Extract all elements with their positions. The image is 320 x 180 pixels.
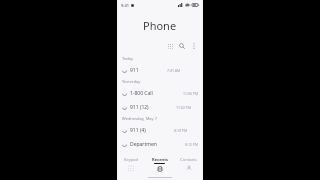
staticText: 1-800 Call FBI (2) xyxy=(130,90,156,97)
staticText: 11:06 PM xyxy=(183,91,199,96)
staticText: 911 (12) xyxy=(130,104,149,111)
button[interactable]: Department Of Justice DC xyxy=(117,137,203,151)
button[interactable]: More options xyxy=(189,41,199,51)
staticText: Wednesday, May 7 xyxy=(122,116,157,121)
staticText: Today xyxy=(122,56,134,61)
staticText: 911 (4) xyxy=(130,127,146,134)
button[interactable]: Contacts xyxy=(174,154,203,174)
button[interactable]: Keypad xyxy=(117,154,145,174)
button[interactable]: 911 (4) xyxy=(117,123,203,137)
staticText: Department Of Justice DC xyxy=(130,141,157,148)
staticText: 11:02 PM xyxy=(176,105,192,110)
staticText: Keypad xyxy=(124,157,138,162)
button[interactable]: 911 xyxy=(117,63,203,77)
button[interactable]: Search xyxy=(177,41,187,51)
button[interactable]: 911 (12) xyxy=(117,100,203,114)
staticText: Phone xyxy=(143,18,177,33)
staticText: 8:18 PM xyxy=(174,128,188,133)
staticText: 8:12 PM xyxy=(185,142,199,147)
staticText: Contacts xyxy=(180,157,197,162)
staticText: Recents xyxy=(152,157,168,162)
staticText: 911 xyxy=(130,67,139,74)
button[interactable]: Keypad xyxy=(165,41,175,51)
button[interactable]: 1-800 Call FBI (2) xyxy=(117,86,203,100)
button[interactable]: Recents xyxy=(145,154,174,174)
staticText: 7:41 AM xyxy=(167,68,181,73)
staticText: Yesterday xyxy=(122,79,141,84)
staticText: 9:41 xyxy=(121,3,129,8)
